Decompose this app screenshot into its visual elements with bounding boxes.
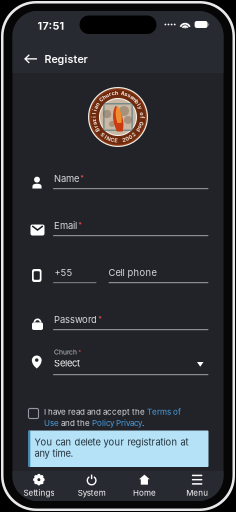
staticText: *	[98, 314, 102, 323]
staticText: Menu	[186, 488, 208, 498]
staticText: .	[142, 418, 144, 428]
staticText: Email	[54, 220, 77, 231]
staticText: 0	[125, 135, 129, 142]
staticText: Use	[44, 418, 59, 428]
staticText: i	[93, 114, 94, 120]
button[interactable]: System	[65, 471, 118, 501]
staticText: r	[109, 91, 111, 97]
staticText: You can delete your registration at any …	[34, 436, 188, 459]
staticText: System	[78, 488, 106, 498]
staticText: S	[101, 131, 104, 138]
staticText: a	[94, 104, 97, 111]
staticText: 0	[129, 134, 133, 140]
staticText: I	[105, 134, 106, 140]
staticText: Settings	[23, 488, 54, 498]
staticText: 2	[132, 131, 135, 138]
staticText: N	[107, 135, 111, 142]
staticText: Terms of	[147, 407, 181, 417]
staticText: h	[102, 94, 105, 100]
staticText: r	[95, 124, 97, 130]
staticText: o	[139, 124, 142, 130]
staticText: Church	[54, 348, 77, 356]
staticText: z	[92, 117, 95, 124]
staticText: e	[130, 94, 133, 100]
staticText: i	[94, 107, 95, 114]
staticText	[141, 107, 142, 114]
staticText: h	[115, 90, 118, 96]
staticText: f	[141, 114, 143, 121]
staticText: o	[140, 110, 143, 117]
staticText: Cell phone	[108, 267, 156, 278]
staticText: C	[99, 96, 103, 103]
staticText: s	[125, 91, 128, 97]
button[interactable]: Menu	[171, 471, 224, 501]
staticText: n	[96, 101, 99, 108]
staticText: s	[128, 92, 131, 99]
staticText: a	[93, 120, 96, 127]
staticText: Password	[54, 314, 97, 325]
staticText: Name	[54, 173, 79, 184]
staticText: d	[137, 126, 140, 133]
staticText: and the	[59, 418, 92, 428]
staticText: *	[78, 348, 81, 355]
staticText: B	[95, 126, 99, 133]
staticText: Home	[133, 488, 156, 498]
button[interactable]: Home	[118, 471, 171, 501]
staticText: A	[121, 90, 125, 97]
staticText: Register	[44, 52, 87, 65]
staticText: I have read and accept the	[44, 407, 147, 417]
staticText: m	[132, 96, 137, 103]
staticText: y	[139, 104, 142, 111]
button[interactable]: Register	[12, 45, 97, 73]
staticText: Policy Privacy	[92, 418, 142, 428]
staticText: +55	[54, 267, 72, 278]
staticText: 17:51	[37, 19, 64, 32]
staticText: u	[105, 92, 108, 99]
button[interactable]: I have read and accept the	[28, 407, 208, 428]
staticText: C	[110, 137, 114, 143]
staticText: c	[112, 90, 115, 97]
staticText: Select	[54, 357, 80, 369]
button[interactable]: Settings	[12, 471, 65, 501]
staticText: E	[114, 137, 117, 144]
staticText: l	[138, 101, 139, 108]
staticText: G	[139, 120, 143, 127]
staticText: b	[135, 99, 138, 105]
staticText: 2	[122, 137, 125, 143]
staticText	[99, 99, 100, 105]
staticText: *	[78, 220, 82, 229]
staticText: *	[80, 173, 84, 182]
